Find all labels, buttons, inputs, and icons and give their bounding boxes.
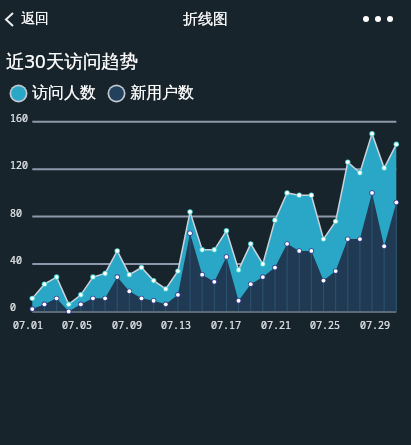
staticText: 近30天访问趋势 — [6, 48, 139, 73]
staticText: 07.29 — [355, 318, 395, 332]
staticText: 120 — [10, 158, 28, 172]
staticText: 新用户数 — [130, 83, 194, 103]
button[interactable]: More options — [353, 8, 411, 30]
button[interactable]: 新用户数 — [107, 83, 194, 103]
staticText: 0 — [10, 300, 16, 314]
staticText: 07.09 — [107, 318, 147, 332]
staticText: 07.17 — [206, 318, 246, 332]
staticText: 07.21 — [256, 318, 296, 332]
staticText: 返回 — [21, 10, 49, 28]
staticText: 折线图 — [183, 10, 228, 29]
staticText: 40 — [10, 253, 22, 267]
staticText: 访问人数 — [32, 83, 96, 103]
staticText: 07.25 — [305, 318, 345, 332]
staticText: 160 — [10, 111, 28, 125]
staticText: 07.13 — [156, 318, 196, 332]
button[interactable]: 访问人数 — [9, 83, 96, 103]
staticText: 07.01 — [8, 318, 48, 332]
staticText: 07.05 — [57, 318, 97, 332]
staticText: 80 — [10, 206, 22, 220]
button[interactable]: 返回 — [0, 4, 59, 34]
